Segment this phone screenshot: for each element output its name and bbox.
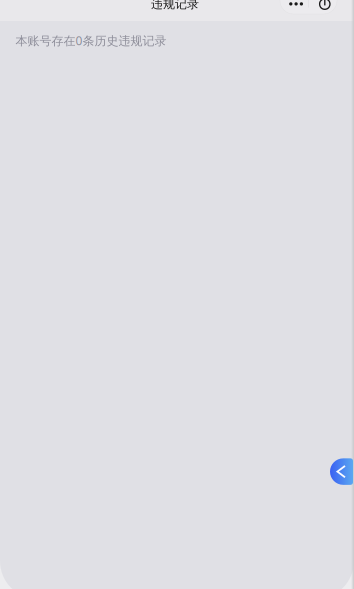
- button[interactable]: Back: [330, 458, 353, 485]
- button[interactable]: More: [280, 0, 308, 14]
- button[interactable]: Close mini program: [309, 0, 337, 14]
- staticText: 本账号存在0条历史违规记录: [15, 32, 166, 49]
- staticText: 违规记录: [151, 0, 199, 11]
